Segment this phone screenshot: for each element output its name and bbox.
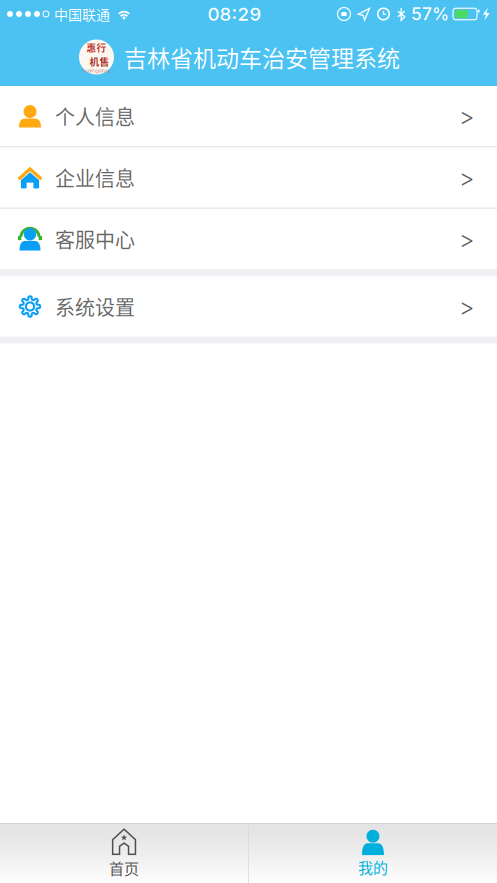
button[interactable]: 客服中心 <box>0 209 497 269</box>
staticText: 57% <box>411 3 449 24</box>
staticText: > <box>459 224 474 253</box>
staticText: 个人信息 <box>55 101 135 130</box>
staticText: 客服中心 <box>55 224 135 253</box>
staticText: 我的 <box>358 856 388 878</box>
staticText: 08:29 <box>207 3 261 25</box>
staticText: 吉林省机动车治安管理系统 <box>124 40 400 74</box>
staticText: 惠行 <box>86 40 106 54</box>
staticText: 机售 <box>89 54 109 68</box>
staticText: > <box>459 292 474 321</box>
button[interactable]: 企业信息 <box>0 147 497 207</box>
staticText: 企业信息 <box>55 163 135 192</box>
staticText: 首页 <box>109 857 139 879</box>
staticText: > <box>459 101 474 130</box>
button[interactable]: 我的 <box>249 824 497 883</box>
staticText: 中国联通 <box>54 4 110 24</box>
staticText: > <box>459 163 474 192</box>
staticText: huixingjishou <box>82 68 111 74</box>
button[interactable]: 个人信息 <box>0 86 497 146</box>
staticText: 系统设置 <box>55 292 135 321</box>
button[interactable]: 系统设置 <box>0 276 497 336</box>
button[interactable]: 首页 <box>0 824 248 883</box>
